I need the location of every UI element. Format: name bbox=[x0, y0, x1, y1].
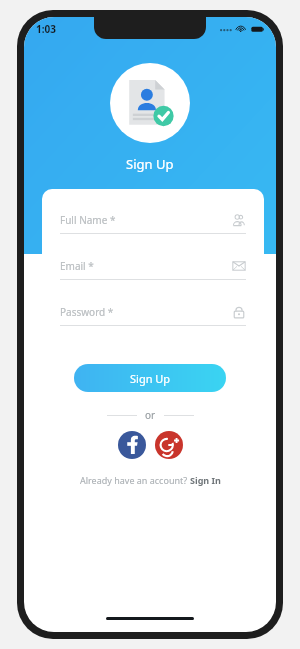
staticText: Sign In bbox=[190, 474, 221, 486]
button[interactable]: Email * bbox=[60, 259, 246, 280]
button[interactable]: Full Name * bbox=[60, 213, 246, 234]
button[interactable]: Sign up with Facebook bbox=[118, 431, 146, 459]
staticText: 1:03 bbox=[36, 22, 56, 36]
staticText: Email * bbox=[60, 259, 232, 273]
button[interactable]: Password * bbox=[60, 305, 246, 326]
staticText: Already have an account? bbox=[80, 474, 190, 486]
staticText: Full Name * bbox=[60, 213, 232, 227]
button[interactable]: Sign up with Google Plus bbox=[155, 431, 183, 459]
staticText: Password * bbox=[60, 305, 232, 319]
staticText: Sign Up bbox=[130, 371, 171, 386]
button[interactable]: Already have an account? bbox=[24, 474, 276, 486]
staticText: Sign Up bbox=[126, 155, 174, 173]
button[interactable]: Sign Up bbox=[74, 364, 226, 392]
staticText: or bbox=[145, 408, 156, 422]
